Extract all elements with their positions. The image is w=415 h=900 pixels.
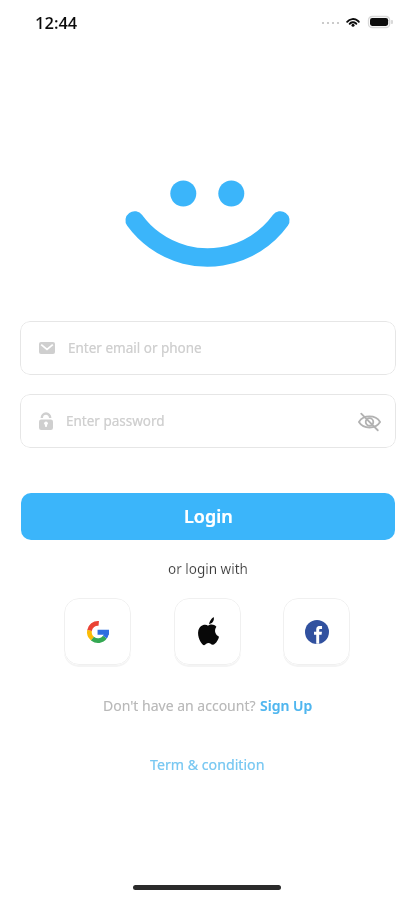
staticText: 12:44 [35,11,78,33]
staticText: Term & condition [150,755,265,774]
button[interactable]: Sign Up [260,694,313,717]
staticText: Sign Up [260,696,313,715]
button[interactable]: Sign in with Apple [174,598,241,665]
button[interactable]: Enter email or phone [20,321,396,375]
button[interactable]: Term & condition [150,753,265,776]
staticText: Login [184,504,233,529]
staticText: Don't have an account? [103,696,260,715]
other: Show password [358,410,381,433]
staticText: Enter email or phone [68,339,202,357]
staticText: Enter password [66,412,165,430]
button[interactable]: Enter password [20,394,396,448]
button[interactable]: Sign in with Facebook [283,598,350,665]
staticText: or login with [168,560,248,578]
button[interactable]: Sign in with Google [64,598,131,665]
button[interactable]: Login [21,493,395,540]
